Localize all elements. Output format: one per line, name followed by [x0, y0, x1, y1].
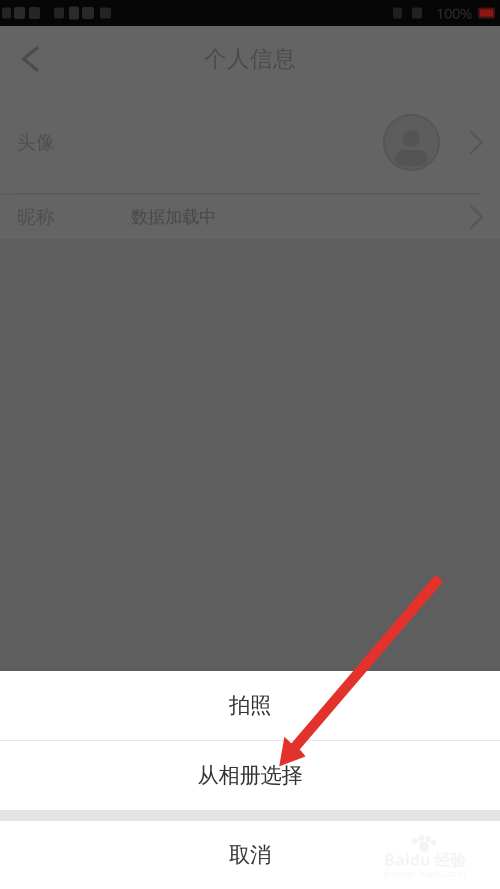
button[interactable]: 昵称 — [0, 195, 500, 239]
staticText: 数据加载中 — [131, 206, 216, 228]
staticText: Baidu 经验 — [384, 849, 466, 870]
staticText: 拍照 — [229, 692, 271, 719]
staticText: 个人信息 — [204, 45, 296, 73]
button[interactable]: Back — [0, 26, 62, 92]
button[interactable]: 取消 — [0, 821, 500, 889]
button[interactable]: 从相册选择 — [0, 741, 500, 810]
staticText: 昵称 — [17, 205, 55, 228]
staticText: 100% — [436, 3, 472, 23]
staticText: 取消 — [229, 842, 271, 868]
button[interactable]: 拍照 — [0, 671, 500, 740]
staticText: 从相册选择 — [197, 762, 302, 789]
staticText: 头像 — [17, 131, 55, 154]
